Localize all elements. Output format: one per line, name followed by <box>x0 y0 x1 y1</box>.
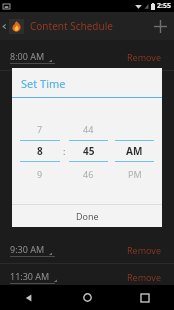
staticText: : <box>63 145 66 157</box>
button[interactable]: 9:30 AM <box>0 237 174 263</box>
staticText: 46 <box>83 168 94 180</box>
staticText: Remove <box>127 244 162 256</box>
staticText: 44 <box>83 123 94 135</box>
button[interactable]: 11:30 AM <box>10 270 57 284</box>
button[interactable]: Recent apps <box>116 285 174 310</box>
button[interactable]: AM <box>115 141 154 161</box>
staticText: Content Schedule <box>30 19 113 33</box>
button[interactable]: Back <box>0 12 9 40</box>
staticText: Set Time <box>21 76 66 91</box>
staticText: 7 <box>37 123 43 135</box>
button[interactable]: Home <box>58 285 116 310</box>
button[interactable]: PM <box>115 166 154 181</box>
staticText: AM <box>126 144 143 158</box>
button[interactable]: Remove <box>121 244 168 256</box>
button[interactable]: 44 <box>69 121 108 136</box>
button[interactable]: Remove <box>121 51 168 63</box>
button[interactable]: 9:30 AM <box>10 243 55 257</box>
staticText: 2:55 <box>157 1 171 11</box>
button[interactable]: 8:00 AM <box>10 50 55 64</box>
staticText: 45 <box>83 144 95 158</box>
button[interactable]: Done <box>12 205 162 227</box>
staticText: Remove <box>127 271 162 283</box>
staticText: 8 <box>37 144 43 158</box>
staticText: 11:30 AM <box>10 270 50 282</box>
staticText: PM <box>128 168 142 180</box>
button[interactable]: 9 <box>20 166 60 181</box>
button[interactable]: 45 <box>69 141 108 161</box>
button[interactable]: Remove <box>121 271 168 283</box>
button[interactable]: 11:30 AM <box>0 264 174 290</box>
button[interactable]: 8:00 AM <box>0 44 174 70</box>
staticText: Done <box>76 210 99 222</box>
staticText: Remove <box>127 51 162 63</box>
button[interactable]: Back <box>0 285 58 310</box>
staticText: 9:30 AM <box>10 243 45 255</box>
button[interactable]: Add <box>146 12 174 40</box>
staticText: 9 <box>37 168 43 180</box>
button[interactable]: 7 <box>20 121 60 136</box>
button[interactable]: 46 <box>69 166 108 181</box>
staticText: 8:00 AM <box>10 50 45 62</box>
button[interactable]: 8 <box>20 141 60 161</box>
